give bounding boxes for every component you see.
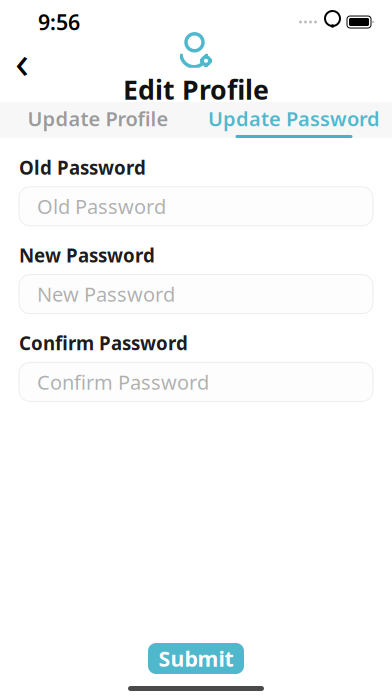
staticText: 9:56 (38, 8, 80, 36)
button[interactable]: Update Password (196, 102, 392, 138)
staticText: New Password (19, 243, 155, 268)
staticText: Edit Profile (123, 72, 269, 107)
staticText: Update Profile (27, 105, 168, 132)
button[interactable]: Submit (148, 643, 244, 674)
staticText: ‹ (15, 31, 29, 91)
staticText: Submit (158, 644, 233, 673)
staticText: Old Password (19, 155, 146, 180)
button[interactable]: Update Profile (0, 102, 196, 138)
button[interactable]: Back (0, 39, 44, 83)
staticText: Update Password (208, 105, 380, 132)
staticText: Old Password (37, 193, 166, 220)
staticText: New Password (37, 281, 175, 307)
staticText: Confirm Password (19, 331, 188, 355)
staticText: Confirm Password (37, 369, 209, 395)
